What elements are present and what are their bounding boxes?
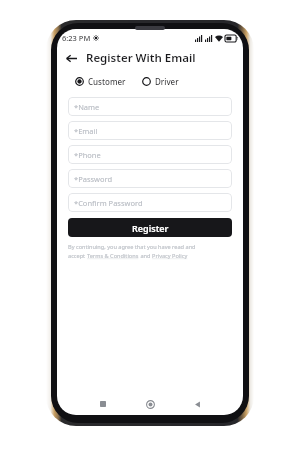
staticText: Terms & Conditions — [87, 252, 139, 260]
button[interactable]: *Name — [68, 97, 232, 116]
button[interactable]: Back — [189, 396, 205, 412]
staticText: *Name — [74, 102, 100, 112]
staticText: *Confirm Password — [74, 198, 143, 208]
staticText: Driver — [155, 76, 179, 87]
button[interactable]: Driver — [141, 74, 180, 89]
staticText: accept — [68, 252, 87, 260]
button[interactable]: Recent apps — [95, 396, 111, 412]
staticText: 6:23 PM — [62, 33, 91, 43]
button[interactable]: *Confirm Password — [68, 193, 232, 212]
button[interactable]: Terms & Conditions — [87, 252, 139, 260]
staticText: Register With Email — [86, 50, 196, 66]
button[interactable]: Privacy Policy — [152, 252, 188, 260]
staticText: By continuing, you agree that you have r… — [68, 243, 196, 251]
staticText: and — [139, 252, 152, 260]
staticText: *Email — [74, 126, 98, 136]
staticText: Privacy Policy — [152, 252, 188, 260]
button[interactable]: Home — [142, 396, 158, 412]
button[interactable]: *Password — [68, 169, 232, 188]
button[interactable]: Customer — [74, 74, 127, 89]
staticText: Register — [132, 222, 169, 234]
button[interactable]: *Phone — [68, 145, 232, 164]
button[interactable]: Back — [61, 48, 81, 68]
staticText: *Phone — [74, 150, 101, 160]
button[interactable]: *Email — [68, 121, 232, 140]
staticText: *Password — [74, 174, 113, 184]
button[interactable]: Register — [68, 218, 232, 237]
staticText: Customer — [88, 76, 126, 87]
